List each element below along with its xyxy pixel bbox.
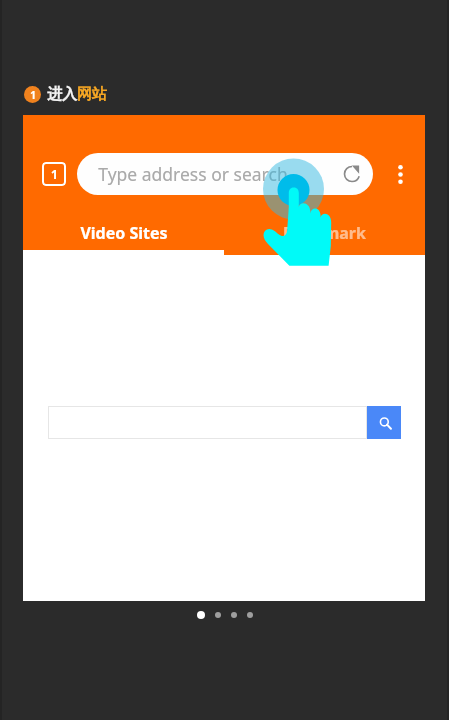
staticText: 1 (51, 166, 58, 182)
button[interactable]: Bookmark (224, 210, 425, 255)
staticText: Type address or search (98, 162, 288, 186)
staticText: 1 (30, 88, 36, 102)
staticText: Video Sites (80, 222, 168, 244)
button[interactable]: Search (367, 406, 401, 439)
staticText: 进入网站 (47, 85, 107, 104)
button[interactable]: Type address or search (77, 153, 373, 195)
staticText: Bookmark (283, 222, 366, 244)
button[interactable]: More options (386, 153, 414, 195)
button[interactable]: Tabs (42, 162, 66, 186)
button[interactable] (48, 406, 367, 439)
button[interactable]: Video Sites (23, 210, 224, 255)
